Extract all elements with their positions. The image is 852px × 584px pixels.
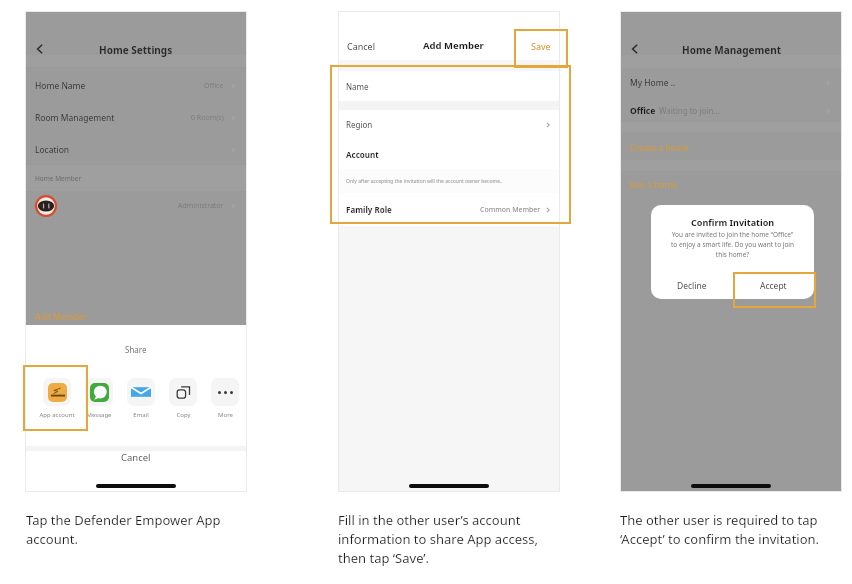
- staticText: Administrator: [178, 201, 224, 211]
- button[interactable]: Create a home: [630, 142, 689, 154]
- staticText: Email: [133, 411, 149, 419]
- staticText: Location: [35, 144, 70, 156]
- staticText: The other user is required to tap ‘Accep…: [620, 511, 836, 548]
- staticText: 0 Room(s): [191, 113, 224, 123]
- button[interactable]: Email: [120, 378, 162, 419]
- staticText: My Home ..: [630, 77, 676, 89]
- staticText: Message: [86, 411, 112, 419]
- staticText: Create a home: [630, 142, 689, 154]
- button[interactable]: Cancel: [347, 40, 376, 52]
- staticText: More: [218, 411, 233, 419]
- button[interactable]: Message: [78, 378, 120, 419]
- staticText: Office: [630, 105, 656, 117]
- staticText: Add Member: [423, 39, 484, 52]
- staticText: Cancel: [347, 40, 376, 52]
- staticText: Only after accepting the invitation will…: [346, 178, 503, 185]
- button[interactable]: App account: [36, 378, 78, 419]
- staticText: Tap the Defender Empower App account.: [26, 511, 236, 548]
- staticText: Common Member: [480, 205, 541, 215]
- staticText: Accept: [760, 280, 787, 292]
- staticText: Family Role: [346, 204, 392, 215]
- button[interactable]: Back: [32, 41, 48, 57]
- staticText: Confirm Invitation: [691, 216, 775, 228]
- button[interactable]: Location: [25, 136, 247, 163]
- button[interactable]: Account: [338, 139, 560, 169]
- staticText: Save: [531, 40, 551, 52]
- button[interactable]: My Home ..: [620, 69, 842, 96]
- staticText: Home Name: [35, 80, 86, 92]
- button[interactable]: Family Role: [338, 193, 560, 226]
- button[interactable]: Room Management: [25, 104, 247, 131]
- button[interactable]: Name: [338, 71, 560, 101]
- button[interactable]: More: [204, 378, 246, 419]
- button[interactable]: Home Name: [25, 72, 247, 99]
- staticText: Share: [125, 344, 147, 355]
- staticText: Home Settings: [99, 43, 173, 57]
- button[interactable]: Accept: [732, 273, 814, 299]
- staticText: Home Management: [682, 43, 781, 57]
- button[interactable]: Region: [338, 110, 560, 139]
- button[interactable]: Save: [531, 40, 551, 52]
- button[interactable]: Office: [620, 97, 842, 124]
- staticText: Cancel: [121, 451, 151, 464]
- staticText: Account: [346, 149, 379, 160]
- staticText: Office: [204, 81, 224, 91]
- staticText: You are invited to join the home “Office…: [656, 230, 809, 259]
- staticText: App account: [39, 411, 75, 419]
- staticText: Fill in the other user’s account informa…: [338, 511, 551, 567]
- button[interactable]: Administrator: [25, 192, 247, 219]
- staticText: Name: [346, 81, 369, 92]
- button[interactable]: Decline: [651, 273, 732, 299]
- staticText: Add Member: [35, 311, 88, 323]
- button[interactable]: Copy: [162, 378, 204, 419]
- staticText: Waiting to join...: [659, 105, 720, 116]
- staticText: Region: [346, 119, 373, 130]
- staticText: Join a home: [630, 179, 678, 191]
- button[interactable]: Add Member: [35, 311, 88, 323]
- button[interactable]: Cancel: [25, 451, 247, 492]
- staticText: Room Management: [35, 112, 115, 124]
- staticText: Copy: [176, 411, 191, 419]
- staticText: Decline: [677, 280, 707, 292]
- staticText: Home Member: [35, 174, 82, 183]
- button[interactable]: Join a home: [630, 179, 678, 191]
- button[interactable]: Back: [627, 41, 643, 57]
